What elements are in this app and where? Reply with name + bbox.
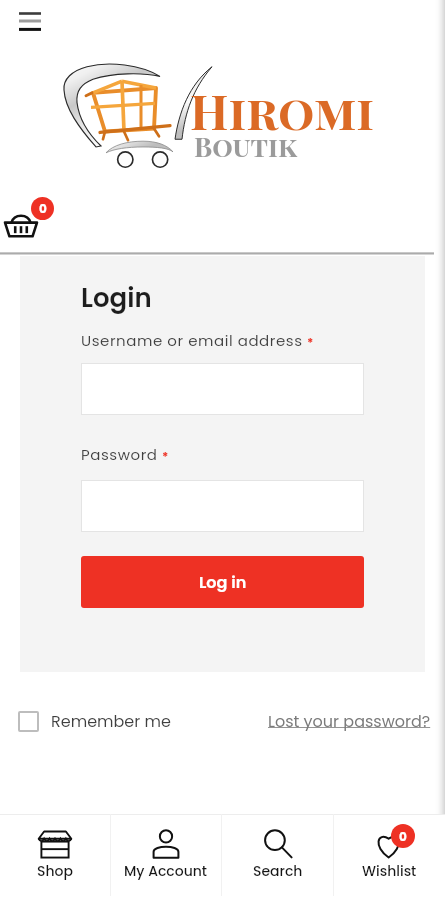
staticText: Remember me (51, 710, 171, 732)
button[interactable]: 0 (334, 814, 445, 900)
staticText: Log in (199, 571, 247, 593)
button[interactable] (81, 363, 364, 415)
staticText: Login (81, 280, 152, 316)
staticText: Hiromi (190, 78, 375, 142)
button[interactable]: Shop (0, 814, 110, 900)
staticText: * (307, 334, 314, 351)
button[interactable]: Log in (81, 556, 364, 608)
staticText: Wishlist (362, 861, 417, 881)
staticText: 0 (39, 200, 47, 217)
button[interactable]: Remember me (18, 710, 171, 732)
staticText: Boutik (194, 128, 298, 164)
staticText: Search (253, 861, 303, 881)
staticText: Password (81, 444, 158, 465)
staticText: My Account (124, 861, 208, 881)
button[interactable]: Menu (8, 2, 52, 42)
staticText: * (162, 448, 169, 465)
button[interactable]: My Account (111, 814, 221, 900)
button[interactable] (81, 480, 364, 532)
staticText: Shop (37, 861, 73, 881)
staticText: Username or email address (81, 330, 303, 351)
button[interactable]: Search (222, 814, 333, 900)
button[interactable]: Lost your password? (268, 710, 431, 732)
button[interactable]: Cart (0, 194, 60, 242)
staticText: 0 (399, 828, 407, 845)
